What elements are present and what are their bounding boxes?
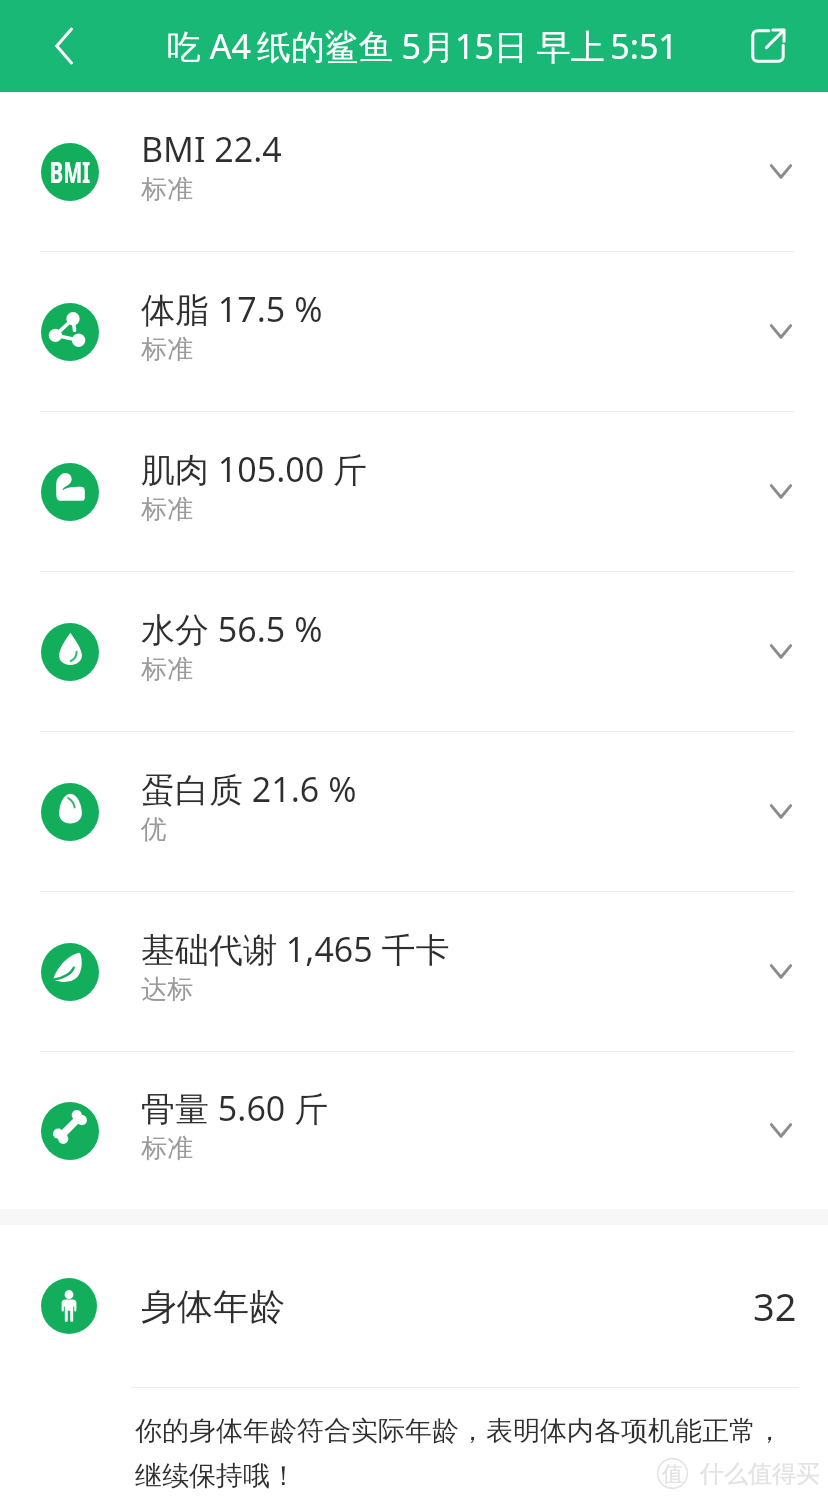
staticText: 标准 — [141, 653, 193, 686]
button[interactable]: 蛋白质 21.6 % — [0, 732, 828, 891]
staticText: 优 — [141, 813, 167, 846]
staticText: 身体年龄 — [141, 1284, 285, 1329]
staticText: 32 — [753, 1280, 797, 1332]
staticText: 什么值得买 — [700, 1459, 820, 1489]
staticText: 骨量 5.60 斤 — [141, 1085, 329, 1131]
button[interactable]: 基础代谢 1,465 千卡 — [0, 892, 828, 1051]
button[interactable]: 体脂 17.5 % — [0, 252, 828, 411]
staticText: 基础代谢 1,465 千卡 — [141, 926, 450, 972]
staticText: 肌肉 105.00 斤 — [141, 446, 368, 492]
staticText: 标准 — [141, 333, 193, 366]
staticText: 标准 — [141, 1132, 193, 1165]
staticText: 你的身体年龄符合实际年龄，表明体内各项机能正常，继续保持哦！ — [135, 1414, 800, 1493]
button[interactable]: 骨量 5.60 斤 — [0, 1052, 828, 1209]
button[interactable]: 身体年龄 — [0, 1225, 828, 1387]
staticText: 标准 — [141, 173, 193, 206]
button[interactable]: 肌肉 105.00 斤 — [0, 412, 828, 571]
staticText: 体脂 17.5 % — [141, 286, 323, 332]
staticText: BMI 22.4 — [141, 126, 282, 172]
staticText: 吃 A4 纸的鲨鱼 5月15日 早上 5:51 — [167, 23, 678, 69]
staticText: 蛋白质 21.6 % — [141, 766, 357, 812]
button[interactable]: Back — [34, 14, 98, 78]
staticText: 标准 — [141, 493, 193, 526]
button[interactable]: Share — [736, 14, 800, 78]
button[interactable]: BMI — [0, 92, 828, 251]
staticText: 达标 — [141, 973, 193, 1006]
staticText: 水分 56.5 % — [141, 606, 323, 652]
staticText: 值 — [662, 1461, 683, 1487]
button[interactable]: 水分 56.5 % — [0, 572, 828, 731]
staticText: BMI — [50, 153, 90, 191]
